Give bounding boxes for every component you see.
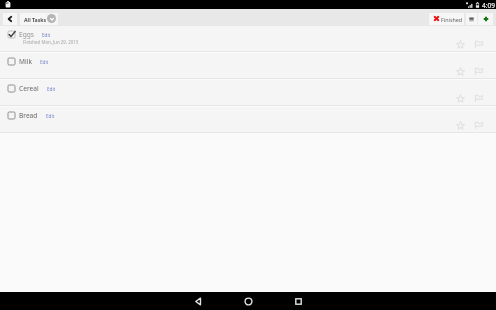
button[interactable]: Star task	[454, 38, 467, 51]
button[interactable]: Bread	[0, 107, 496, 134]
staticText: Finished	[441, 16, 463, 23]
staticText: Edit	[47, 86, 56, 92]
staticText: Eggs	[19, 30, 34, 39]
staticText: Bread	[19, 111, 38, 120]
button[interactable]: Cereal	[0, 80, 496, 107]
button[interactable]: Add task	[478, 13, 493, 25]
button[interactable]: Edit	[39, 57, 50, 65]
button[interactable]: Star task	[454, 65, 467, 78]
button[interactable]: Eggs	[0, 26, 496, 53]
button[interactable]: Edit	[46, 84, 57, 92]
button[interactable]: All Tasks	[20, 13, 58, 25]
staticText: All Tasks	[24, 16, 47, 23]
button[interactable]: Edit	[41, 30, 52, 38]
staticText: Edit	[46, 113, 55, 119]
button[interactable]: Back	[3, 13, 17, 25]
button[interactable]: Recent apps	[289, 292, 307, 310]
staticText: Milk	[19, 57, 32, 66]
staticText: Finished Mon, Jun 29, 2015	[23, 39, 79, 45]
staticText: Cereal	[19, 84, 39, 93]
button[interactable]: Home	[239, 292, 257, 310]
button[interactable]: Sort list	[466, 13, 477, 25]
button[interactable]: Finished	[429, 13, 464, 25]
staticText: Edit	[40, 59, 49, 65]
button[interactable]: Milk	[0, 53, 496, 80]
button[interactable]: Edit	[45, 111, 56, 119]
button[interactable]: Flag task	[472, 119, 485, 132]
button[interactable]: Star task	[454, 119, 467, 132]
button[interactable]: Flag task	[472, 38, 485, 51]
button[interactable]: Back	[189, 292, 207, 310]
button[interactable]: Flag task	[472, 92, 485, 105]
staticText: 4:09	[482, 1, 495, 10]
button[interactable]: Star task	[454, 92, 467, 105]
button[interactable]: Flag task	[472, 65, 485, 78]
staticText: Edit	[42, 32, 51, 38]
